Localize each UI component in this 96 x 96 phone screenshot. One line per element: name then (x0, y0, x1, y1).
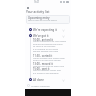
staticText: to catch it on the way (33, 45, 56, 48)
staticText: it is coming to you soon (33, 48, 59, 51)
staticText: We've got it (33, 34, 49, 38)
button[interactable]: We're expecting it (25, 27, 71, 33)
staticText: and it is in the local centre (33, 59, 61, 62)
staticText: Activity timeline (31, 84, 50, 87)
staticText: it'll arrive in the evening (33, 72, 59, 75)
staticText: We're expecting it (33, 28, 57, 32)
button[interactable]: We've got it (25, 33, 71, 39)
button[interactable] (26, 15, 70, 24)
staticText: Tap to see all of your items (28, 19, 57, 22)
staticText: All done (33, 78, 44, 82)
staticText: 15:00 - sent it (33, 67, 50, 71)
staticText: Your activity list (26, 10, 50, 14)
button[interactable]: All done (25, 77, 71, 83)
staticText: We're checking it on your panel (33, 40, 67, 43)
button[interactable]: Activity timeline (27, 83, 50, 87)
staticText: we will update you here (33, 50, 59, 53)
button[interactable]: Back (26, 6, 30, 10)
staticText: 10:00 - arrived it (33, 38, 54, 42)
staticText: We're sorting your parcel now (33, 57, 65, 60)
staticText: Upcoming entry (28, 16, 50, 20)
staticText: Out for delivery today and (33, 69, 61, 72)
staticText: now on the road to reach you (33, 65, 65, 68)
staticText: 11:30 - sorted it (33, 54, 53, 58)
staticText: and we are taking the cloud (33, 43, 63, 46)
staticText: 13:00 - moved it (33, 62, 53, 66)
staticText: 9:41 (34, 0, 40, 4)
